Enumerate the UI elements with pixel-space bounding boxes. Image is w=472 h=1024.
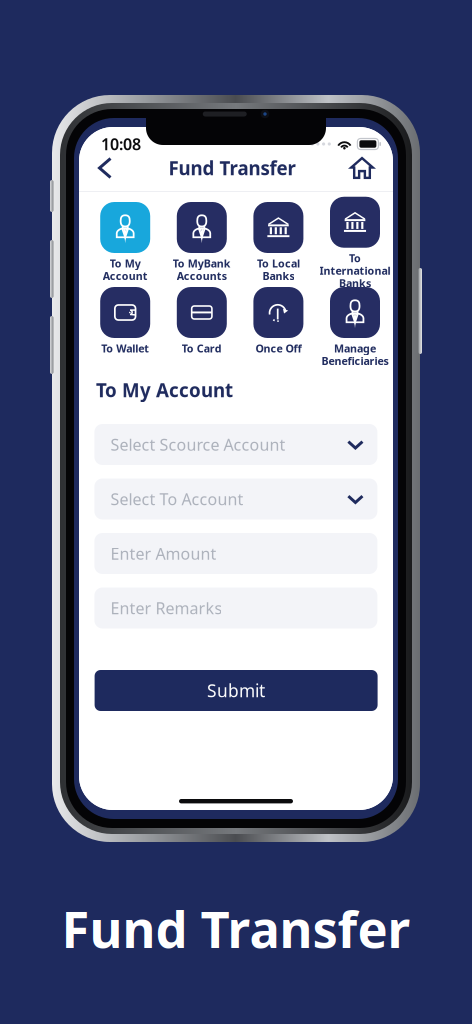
button[interactable]: Select Scource Account	[94, 424, 377, 465]
staticText: Once Off	[255, 341, 301, 355]
staticText: To	[349, 251, 361, 265]
staticText: To Local	[257, 256, 300, 270]
staticText: To Card	[182, 341, 222, 355]
staticText: Fund Transfer	[61, 895, 410, 962]
staticText: International	[319, 263, 390, 278]
button[interactable]: Enter Amount	[94, 533, 377, 574]
button[interactable]: To MyBank	[163, 202, 240, 284]
button[interactable]: To	[317, 202, 393, 284]
button[interactable]: To Local	[240, 202, 317, 284]
staticText: 10:08	[101, 133, 141, 155]
staticText: Banks	[262, 269, 294, 283]
staticText: To My	[110, 256, 141, 270]
staticText: Beneficiaries	[321, 354, 388, 368]
staticText: Fund Transfer	[168, 156, 295, 180]
staticText: To My Account	[96, 378, 233, 402]
button[interactable]: Manage	[317, 287, 393, 369]
button[interactable]: Home	[345, 151, 379, 185]
staticText: Select Scource Account	[110, 434, 285, 455]
staticText: Submit	[207, 679, 265, 702]
staticText: Accounts	[177, 269, 227, 283]
staticText: Manage	[334, 341, 376, 355]
button[interactable]: To My	[87, 202, 163, 284]
staticText: Select To Account	[110, 488, 243, 510]
button[interactable]: To Card	[163, 287, 240, 369]
staticText: Account	[103, 269, 148, 283]
staticText: Enter Amount	[110, 543, 216, 564]
staticText: To Wallet	[101, 341, 149, 355]
button[interactable]: Submit	[95, 670, 378, 711]
button[interactable]: Enter Remarks	[94, 587, 377, 628]
button[interactable]: Select To Account	[94, 478, 377, 519]
staticText: Enter Remarks	[110, 597, 222, 619]
button[interactable]: Back	[91, 153, 119, 183]
button[interactable]: To Wallet	[87, 287, 163, 369]
staticText: Banks	[339, 276, 371, 290]
staticText: To MyBank	[173, 256, 231, 270]
button[interactable]: Once Off	[240, 287, 317, 369]
